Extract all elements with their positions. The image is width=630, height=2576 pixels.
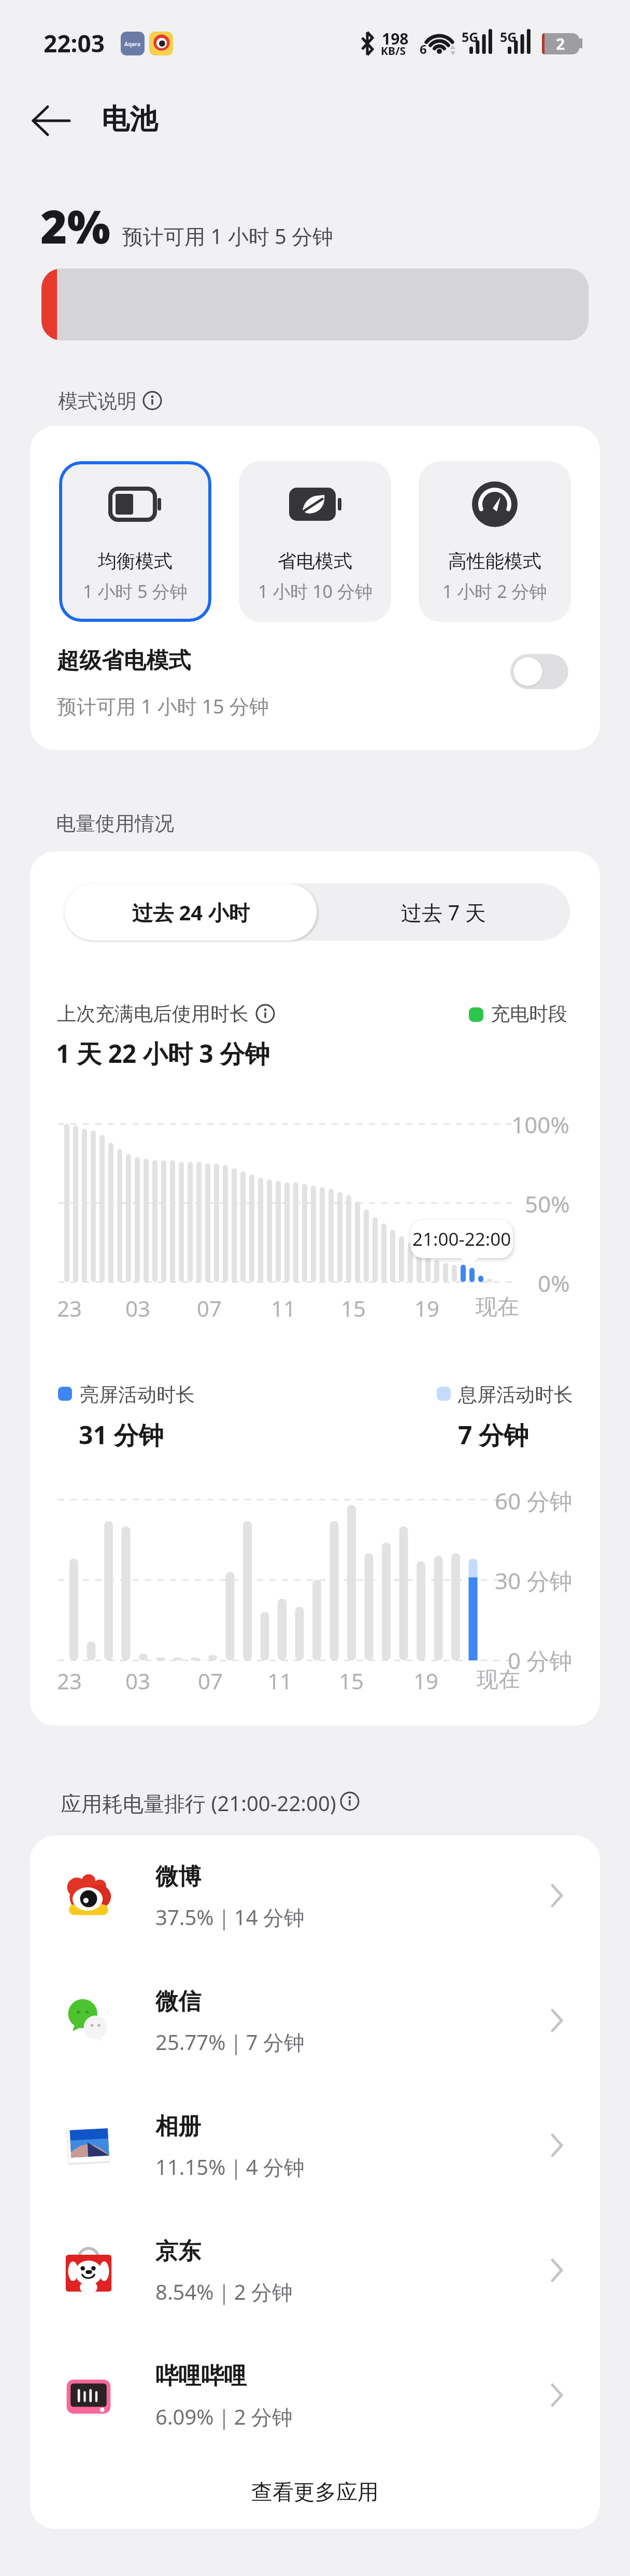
- staticText: 07: [198, 1666, 223, 1696]
- staticText: Aqara: [124, 40, 141, 48]
- staticText: 100%: [511, 1109, 570, 1140]
- staticText: 07: [197, 1293, 222, 1323]
- staticText: 5G: [500, 28, 517, 46]
- button[interactable]: [30, 2083, 600, 2208]
- staticText: 亮屏活动时长: [80, 1383, 195, 1407]
- staticText: 03: [125, 1293, 151, 1323]
- staticText: 2: [556, 33, 565, 54]
- staticText: 息屏活动时长: [458, 1383, 573, 1407]
- staticText: 50%: [525, 1188, 570, 1219]
- button[interactable]: 过去 7 天: [317, 884, 570, 941]
- button[interactable]: [30, 2333, 600, 2457]
- staticText: 过去 24 小时: [132, 898, 250, 927]
- staticText: 1 小时 10 分钟: [258, 579, 373, 603]
- staticText: 6.09%｜2 分钟: [155, 2402, 293, 2431]
- staticText: 23: [57, 1293, 82, 1323]
- staticText: 高性能模式: [448, 549, 541, 573]
- staticText: 微博: [155, 1862, 201, 1891]
- staticText: 2%: [40, 195, 110, 257]
- staticText: 微信: [155, 1987, 201, 2016]
- button[interactable]: 高性能模式: [419, 461, 571, 622]
- button[interactable]: [30, 637, 600, 725]
- button[interactable]: 过去 24 小时: [64, 884, 317, 941]
- staticText: 11: [267, 1666, 293, 1696]
- staticText: 现在: [477, 1666, 520, 1693]
- staticText: 应用耗电量排行 (21:00-22:00): [61, 1789, 336, 1817]
- button[interactable]: [30, 1958, 600, 2083]
- staticText: 22:03: [44, 27, 105, 60]
- staticText: 15: [341, 1293, 366, 1323]
- staticText: 超级省电模式: [57, 647, 191, 675]
- staticText: 电量使用情况: [56, 811, 174, 836]
- staticText: 京东: [155, 2237, 201, 2266]
- staticText: 电池: [102, 102, 157, 137]
- staticText: 60 分钟: [495, 1485, 572, 1516]
- staticText: 0%: [538, 1268, 570, 1299]
- staticText: 19: [414, 1293, 440, 1323]
- button[interactable]: 均衡模式: [59, 461, 211, 622]
- staticText: 31 分钟: [79, 1418, 164, 1452]
- staticText: 30 分钟: [495, 1565, 572, 1596]
- button[interactable]: 查看更多应用: [30, 2467, 600, 2518]
- staticText: 均衡模式: [98, 549, 173, 573]
- staticText: 模式说明: [58, 389, 137, 414]
- staticText: 37.5%｜14 分钟: [155, 1903, 305, 1931]
- staticText: KB/S: [381, 44, 406, 59]
- staticText: 现在: [476, 1293, 519, 1321]
- staticText: 198: [382, 28, 409, 49]
- staticText: 查看更多应用: [251, 2479, 379, 2506]
- staticText: 过去 7 天: [401, 898, 486, 927]
- staticText: 19: [413, 1666, 439, 1696]
- staticText: 15: [339, 1666, 364, 1696]
- button[interactable]: 省电模式: [239, 461, 391, 622]
- staticText: 0 分钟: [508, 1645, 572, 1676]
- staticText: 03: [125, 1666, 151, 1696]
- staticText: 7 分钟: [458, 1418, 528, 1452]
- staticText: 哔哩哔哩: [155, 2362, 247, 2390]
- staticText: 5G: [462, 28, 479, 46]
- staticText: 充电时段: [491, 1002, 567, 1026]
- staticText: 上次充满电后使用时长: [57, 1002, 249, 1026]
- staticText: 预计可用 1 小时 15 分钟: [57, 692, 269, 719]
- staticText: 23: [57, 1666, 82, 1696]
- staticText: 6: [420, 40, 427, 58]
- staticText: 11.15%｜4 分钟: [155, 2153, 305, 2181]
- staticText: 预计可用 1 小时 5 分钟: [122, 222, 334, 250]
- staticText: 25.77%｜7 分钟: [155, 2028, 305, 2056]
- staticText: 21:00-22:00: [412, 1227, 511, 1251]
- staticText: 1 小时 5 分钟: [83, 579, 188, 603]
- button[interactable]: [30, 2208, 600, 2332]
- staticText: 11: [271, 1293, 296, 1323]
- staticText: 1 小时 2 分钟: [442, 579, 547, 603]
- staticText: 8.54%｜2 分钟: [155, 2278, 293, 2306]
- staticText: 1 天 22 小时 3 分钟: [56, 1036, 270, 1071]
- button[interactable]: [30, 1833, 600, 1958]
- staticText: 相册: [155, 2112, 201, 2141]
- button[interactable]: [25, 104, 71, 138]
- staticText: 省电模式: [278, 549, 352, 573]
